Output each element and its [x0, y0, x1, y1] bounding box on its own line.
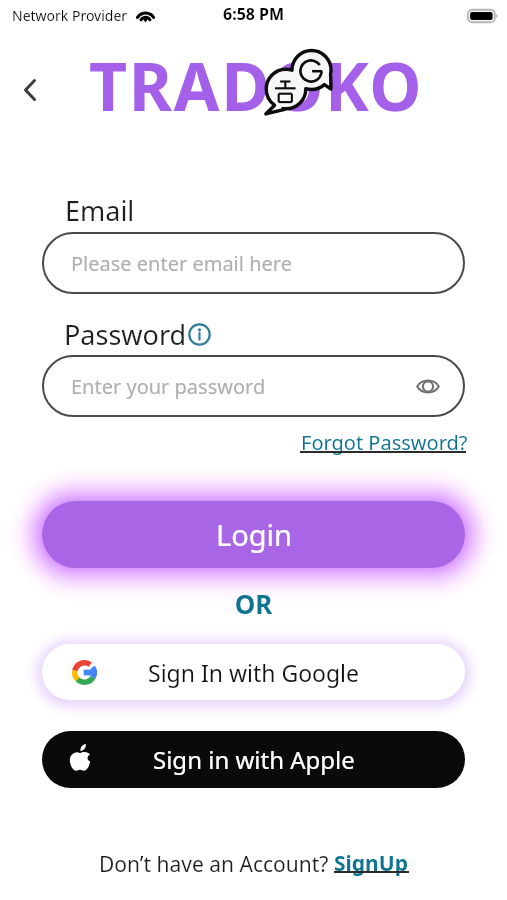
staticText: TRADOKO — [89, 40, 424, 130]
button[interactable]: Sign In with Google — [42, 644, 465, 700]
button[interactable]: Show password — [413, 371, 443, 401]
staticText: Sign In with Google — [148, 657, 360, 688]
staticText: Please enter email here — [71, 250, 292, 277]
button[interactable]: SignUp — [334, 849, 409, 879]
button[interactable]: Forgot Password? — [296, 427, 473, 458]
staticText: Don’t have an Account? — [99, 850, 334, 879]
button[interactable]: Enter your password — [42, 355, 465, 417]
staticText: Enter your password — [71, 373, 266, 400]
button[interactable]: Sign in with Apple — [42, 731, 465, 788]
staticText: 6:58 PM — [223, 3, 285, 25]
button[interactable]: Please enter email here — [42, 232, 465, 294]
staticText: Password — [64, 316, 187, 353]
button[interactable]: Back — [11, 71, 49, 109]
staticText: Sign in with Apple — [153, 743, 355, 776]
staticText: Email — [65, 192, 135, 229]
staticText: Forgot Password? — [301, 429, 468, 456]
button[interactable]: Login — [42, 501, 465, 568]
staticText: SignUp — [334, 849, 408, 878]
staticText: OR — [0, 586, 507, 621]
staticText: Network Provider — [12, 6, 128, 25]
staticText: Login — [216, 515, 292, 554]
